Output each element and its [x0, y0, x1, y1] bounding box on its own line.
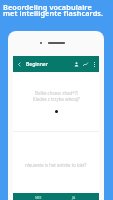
button[interactable]: JA — [62, 194, 86, 200]
button[interactable]: NEE — [26, 194, 50, 200]
button[interactable]: Back — [15, 60, 24, 69]
button[interactable]: Statistics — [81, 60, 90, 69]
staticText: JA — [72, 195, 76, 200]
staticText: Kiedes z trzyba wiecej? — [33, 96, 80, 102]
button[interactable]: More options — [90, 60, 98, 68]
staticText: nieuwste is het entrée to kiet? — [25, 162, 87, 168]
staticText: Bolke chcesz zhad*?! — [35, 90, 78, 96]
staticText: Beginner — [26, 61, 48, 68]
staticText: NEE — [35, 195, 42, 200]
button[interactable]: Profile — [72, 60, 81, 69]
staticText: Beoordeling vocabulaire met intelligente… — [3, 2, 104, 18]
